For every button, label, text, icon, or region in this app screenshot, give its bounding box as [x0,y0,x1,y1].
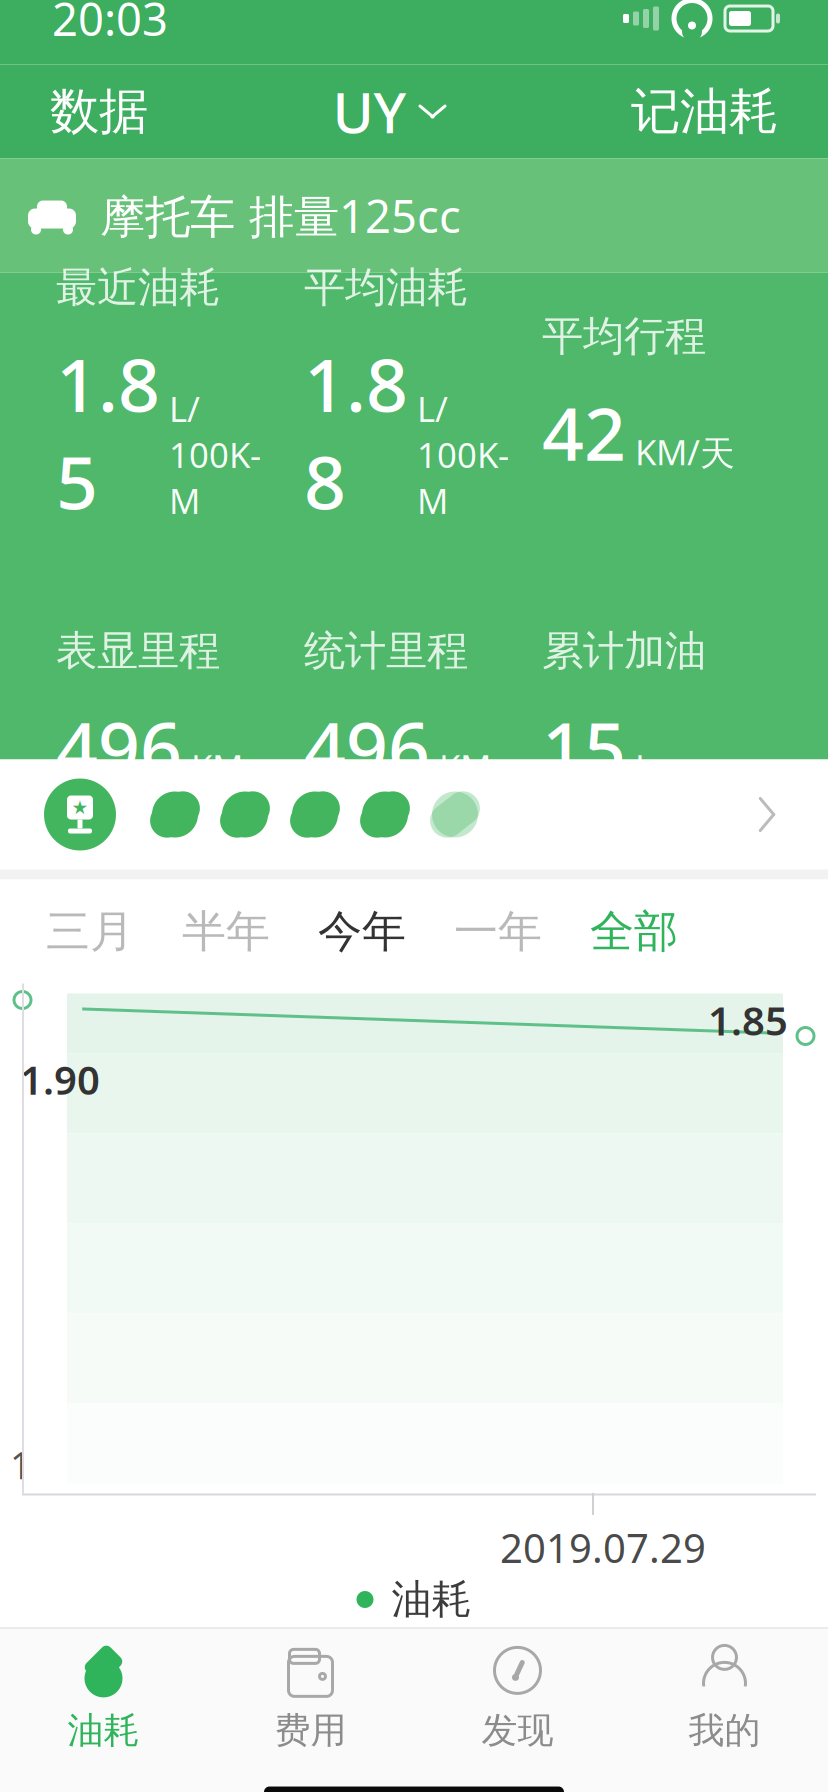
staticText: 费用 [274,1708,346,1753]
staticText: 1 [10,1440,31,1489]
staticText: 油耗 [391,1575,471,1624]
staticText: 1.85 [56,335,160,530]
staticText: 摩托车 排量125cc [100,185,461,246]
button[interactable]: 油耗 [0,1628,207,1768]
button[interactable]: 费用 [207,1628,414,1768]
staticText: 2019.07.29 [500,1521,706,1574]
staticText: 三月 [46,904,134,958]
staticText: 累计加油 [542,626,706,676]
staticText: 我的 [688,1708,760,1753]
staticText: 全部 [590,904,678,958]
staticText: 统计里程 [304,626,468,676]
staticText: KM [191,744,243,790]
button[interactable]: 发现 [414,1628,621,1768]
staticText: 一年 [454,904,542,958]
staticText: 今年 [318,904,406,958]
staticText: 最近油耗 [56,262,220,313]
button[interactable]: UY [318,62,460,161]
staticText: 油耗 [67,1708,139,1753]
button[interactable]: 三月 [34,888,146,974]
staticText: 1.85 [708,993,788,1047]
staticText: 记油耗 [631,81,778,142]
button[interactable]: 一年 [442,888,554,974]
staticText: ★ [71,797,88,818]
staticText: 496 [56,698,182,796]
staticText: 15 [542,698,626,796]
staticText: L/100KM [417,386,509,524]
staticText: KM [439,744,491,790]
button[interactable]: 全部 [578,888,690,974]
staticText: L [635,744,653,790]
staticText: KM/天 [635,429,735,475]
button[interactable]: 半年 [170,888,282,974]
staticText: 平均油耗 [304,262,468,313]
staticText: 1.90 [20,1053,100,1106]
staticText: 平均行程 [542,311,706,362]
staticText: UY [332,74,406,149]
staticText: L/100KM [169,386,261,524]
staticText: 20:03 [52,0,168,49]
button[interactable]: ★ [0,759,828,869]
button[interactable]: 数据 [38,67,160,156]
staticText: 数据 [50,81,148,142]
staticText: 1.88 [304,335,408,530]
button[interactable]: 今年 [306,888,418,974]
staticText: 496 [304,698,430,796]
staticText: 表显里程 [56,626,220,676]
staticText: 42 [542,384,626,481]
staticText: 发现 [481,1708,553,1753]
button[interactable]: 记油耗 [619,67,790,156]
staticText: 半年 [182,904,270,958]
button[interactable]: 我的 [621,1628,828,1768]
